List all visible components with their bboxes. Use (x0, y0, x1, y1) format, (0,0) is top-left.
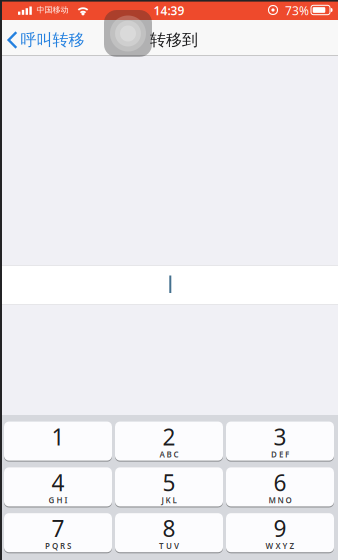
staticText: 14:39 (153, 3, 184, 19)
staticText: 9 (273, 513, 286, 543)
staticText: P Q R S (45, 541, 71, 551)
button[interactable]: 5 (115, 467, 223, 507)
staticText: 转移到 (150, 30, 198, 50)
staticText: 3 (273, 421, 286, 452)
staticText: 5 (162, 467, 175, 497)
button[interactable]: 1 (4, 421, 112, 461)
staticText: 4 (51, 467, 64, 497)
staticText: J K L (161, 495, 176, 505)
button[interactable]: 2 (115, 421, 223, 461)
staticText: 2 (162, 421, 175, 452)
staticText: 8 (162, 513, 175, 543)
staticText: W X Y Z (265, 541, 294, 551)
staticText: 呼叫转移 (20, 30, 84, 50)
staticText: 1 (51, 421, 64, 452)
staticText: M N O (268, 495, 291, 505)
staticText: D E F (271, 449, 289, 460)
staticText: A B C (159, 449, 178, 460)
staticText: 中国移动 (36, 5, 68, 15)
button[interactable]: 3 (226, 421, 334, 461)
button[interactable]: 9 (226, 513, 334, 553)
button[interactable]: AssistiveTouch (104, 10, 152, 57)
button[interactable]: 电话号码 (0, 265, 338, 305)
button[interactable]: 4 (4, 467, 112, 507)
staticText: T U V (159, 541, 179, 551)
button[interactable]: 7 (4, 513, 112, 553)
staticText: 73% (285, 3, 309, 18)
button[interactable]: 6 (226, 467, 334, 507)
staticText: 7 (51, 513, 64, 543)
button[interactable]: 返回 呼叫转移 (0, 20, 92, 56)
staticText: G H I (48, 495, 67, 505)
button[interactable]: 8 (115, 513, 223, 553)
staticText: 6 (273, 467, 286, 497)
